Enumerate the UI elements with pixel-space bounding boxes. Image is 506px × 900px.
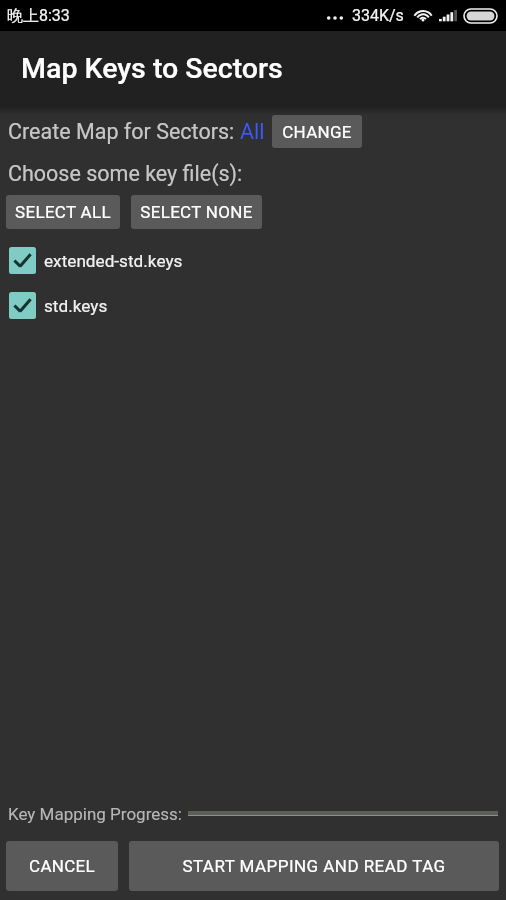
button[interactable]: SELECT NONE: [131, 195, 262, 229]
staticText: std.keys: [44, 296, 108, 316]
button[interactable]: CANCEL: [6, 841, 118, 891]
staticText: SELECT NONE: [140, 202, 253, 222]
button[interactable]: SELECT ALL: [6, 195, 120, 229]
staticText: Choose some key file(s):: [8, 161, 243, 186]
staticText: Key Mapping Progress:: [8, 804, 182, 824]
staticText: 334K/s: [352, 6, 404, 25]
button[interactable]: START MAPPING AND READ TAG: [129, 841, 499, 891]
staticText: Create Map for Sectors:: [8, 119, 240, 144]
staticText: extended-std.keys: [44, 251, 183, 271]
staticText: START MAPPING AND READ TAG: [182, 856, 446, 876]
staticText: All: [240, 119, 265, 144]
staticText: Map Keys to Sectors: [21, 52, 283, 85]
staticText: 晚上8:33: [7, 6, 70, 26]
staticText: SELECT ALL: [15, 202, 111, 222]
staticText: CANCEL: [29, 856, 95, 876]
button[interactable]: CHANGE: [272, 115, 362, 148]
button[interactable]: std.keys: [0, 283, 506, 328]
button[interactable]: extended-std.keys: [0, 238, 506, 283]
staticText: CHANGE: [282, 122, 352, 142]
